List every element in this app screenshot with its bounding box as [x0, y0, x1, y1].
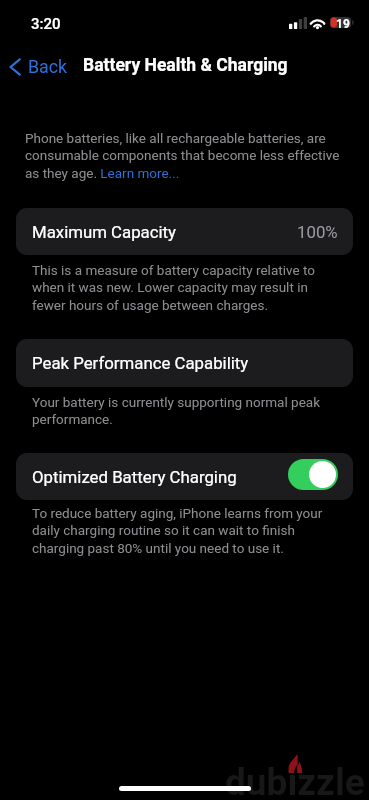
staticText: This is a measure of battery capacity re…	[32, 262, 344, 314]
button[interactable]: Back	[1, 52, 76, 81]
staticText: Your battery is currently supporting nor…	[32, 394, 344, 428]
button[interactable]: Learn more	[100, 165, 179, 181]
staticText: Phone batteries, like all rechargeable b…	[25, 130, 345, 182]
button[interactable]: Peak Performance Capability	[16, 339, 353, 387]
staticText: Battery Health & Charging	[83, 55, 288, 76]
button[interactable]: Maximum Capacity	[16, 208, 353, 255]
button[interactable]: Optimized Battery Charging toggle	[288, 459, 338, 490]
staticText: Optimized Battery Charging	[32, 467, 237, 487]
staticText: Peak Performance Capability	[32, 353, 249, 373]
staticText: To reduce battery aging, iPhone learns f…	[32, 505, 344, 557]
other: Battery 19 percent	[330, 17, 353, 28]
other: Cellular signal	[289, 17, 307, 29]
other: Wi-Fi	[309, 17, 326, 29]
staticText: 3:20	[31, 15, 61, 33]
staticText: Back	[28, 56, 68, 77]
staticText: dubizzle	[225, 761, 365, 800]
button[interactable]: Optimized Battery Charging	[16, 453, 353, 500]
staticText: 19	[336, 17, 350, 28]
staticText: 100%	[297, 222, 338, 242]
staticText: Maximum Capacity	[32, 222, 177, 242]
